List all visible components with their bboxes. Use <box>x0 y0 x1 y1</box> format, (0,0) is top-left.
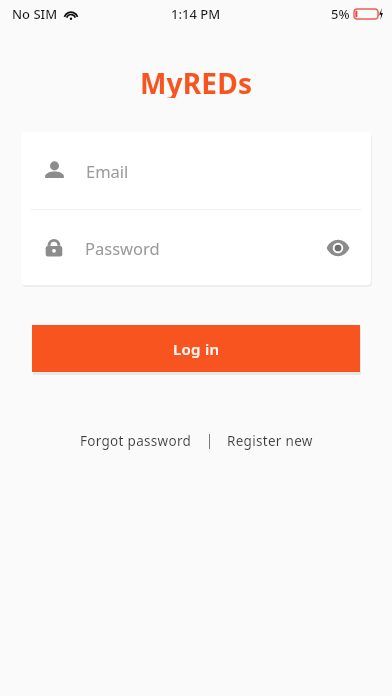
button[interactable]: Register new <box>222 428 318 454</box>
staticText: 1:14 PM <box>171 5 221 23</box>
staticText: 5% <box>331 5 350 23</box>
button[interactable]: Password <box>21 210 371 285</box>
staticText: Email <box>86 160 129 182</box>
staticText: No SIM <box>12 5 58 23</box>
staticText: Password <box>85 237 160 259</box>
staticText: MyREDs <box>140 64 253 98</box>
button[interactable]: Show password <box>321 231 355 265</box>
staticText: Register new <box>227 432 313 450</box>
button[interactable]: Forgot password <box>75 428 197 454</box>
staticText: Forgot password <box>80 432 192 450</box>
button[interactable]: Log in <box>32 325 360 372</box>
button[interactable]: Email <box>21 132 371 209</box>
staticText: Log in <box>173 339 220 359</box>
